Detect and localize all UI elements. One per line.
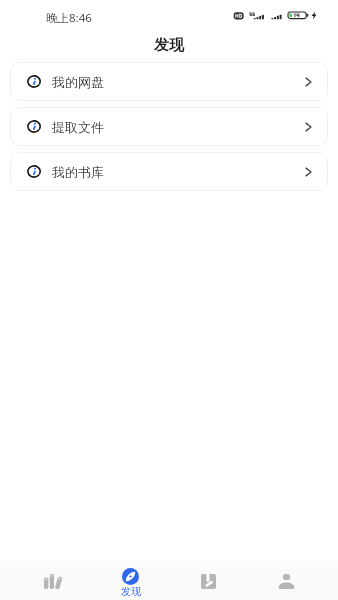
button[interactable]: 我的网盘 [10, 62, 328, 101]
staticText: 提取文件 [52, 119, 104, 135]
button[interactable]: 提取文件 [10, 107, 328, 146]
button[interactable]: 书架 [15, 561, 92, 600]
button[interactable]: 我的 [247, 561, 325, 600]
staticText: 发现 [121, 585, 141, 598]
staticText: 晚上8:46 [46, 10, 92, 26]
button[interactable]: 我的书库 [10, 152, 328, 191]
button[interactable]: 发现 [92, 561, 169, 600]
staticText: 我的书库 [52, 164, 104, 180]
staticText: 发现 [154, 36, 184, 55]
button[interactable]: 笔记 [169, 561, 247, 600]
staticText: 我的网盘 [52, 74, 104, 90]
